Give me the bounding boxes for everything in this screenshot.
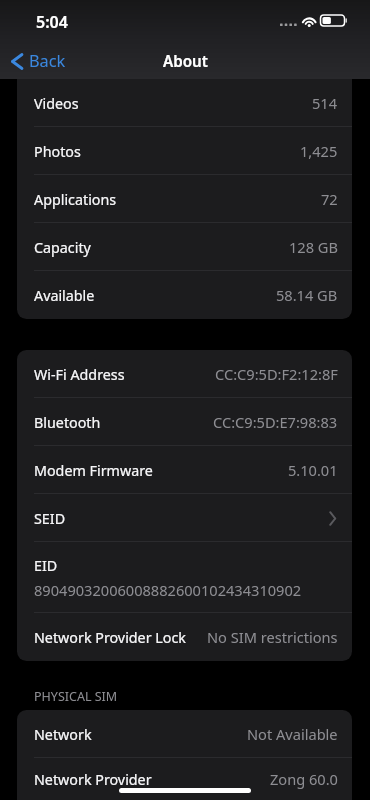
button[interactable]: EID: [17, 542, 352, 613]
staticText: 5.10.01: [288, 460, 338, 480]
staticText: CC:C9:5D:E7:98:83: [213, 412, 338, 432]
button[interactable]: Photos: [17, 127, 352, 175]
staticText: Capacity: [34, 238, 91, 257]
staticText: CC:C9:5D:F2:12:8F: [215, 364, 338, 384]
staticText: Back: [29, 50, 66, 72]
staticText: Network: [34, 725, 92, 744]
button[interactable]: Available: [17, 271, 352, 319]
staticText: 72: [321, 189, 338, 209]
button[interactable]: Wi-Fi Address: [17, 350, 352, 398]
button[interactable]: Network Provider Lock: [17, 613, 352, 661]
staticText: 58.14 GB: [276, 285, 338, 305]
staticText: Photos: [34, 142, 81, 161]
staticText: Zong 60.0: [270, 769, 338, 789]
button[interactable]: Capacity: [17, 223, 352, 271]
staticText: Network Provider Lock: [34, 628, 186, 647]
button[interactable]: Network: [17, 710, 352, 758]
staticText: Modem Firmware: [34, 461, 153, 480]
staticText: Wi-Fi Address: [34, 365, 125, 384]
button[interactable]: Modem Firmware: [17, 446, 352, 494]
staticText: Videos: [34, 94, 79, 113]
staticText: About: [163, 51, 208, 72]
staticText: Network Provider: [34, 770, 152, 789]
staticText: 5:04: [36, 11, 68, 33]
button[interactable]: SEID: [17, 494, 352, 542]
staticText: No SIM restrictions: [207, 627, 338, 647]
staticText: Bluetooth: [34, 413, 101, 432]
staticText: Available: [34, 286, 95, 305]
staticText: 128 GB: [289, 237, 338, 257]
staticText: Not Available: [247, 724, 338, 744]
staticText: PHYSICAL SIM: [34, 688, 118, 705]
button[interactable]: Videos: [17, 79, 352, 127]
button[interactable]: Bluetooth: [17, 398, 352, 446]
button[interactable]: Back: [0, 46, 76, 76]
staticText: SEID: [34, 509, 66, 528]
staticText: 89049032006008882600102434310902: [34, 580, 302, 600]
staticText: 514: [312, 93, 338, 113]
staticText: 1,425: [300, 141, 338, 161]
button[interactable]: Applications: [17, 175, 352, 223]
staticText: EID: [34, 556, 58, 575]
staticText: Applications: [34, 190, 117, 209]
button[interactable]: Network Provider: [17, 758, 352, 800]
